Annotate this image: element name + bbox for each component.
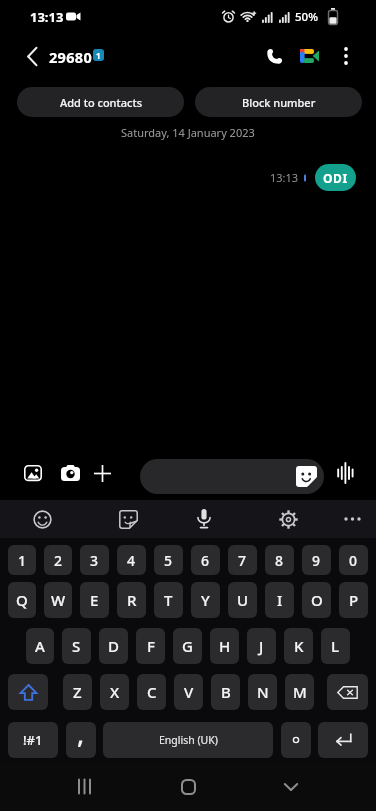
button[interactable]: E xyxy=(80,582,109,618)
staticText: N xyxy=(257,682,269,702)
staticText: H xyxy=(219,636,231,656)
button[interactable]: Q xyxy=(8,582,36,618)
staticText: Y xyxy=(201,590,210,610)
button[interactable]: Y xyxy=(191,582,220,618)
button[interactable]: 5 xyxy=(154,545,183,575)
button[interactable]: V xyxy=(174,674,203,710)
staticText: 4 xyxy=(127,551,136,570)
button[interactable] xyxy=(140,459,324,494)
button[interactable] xyxy=(171,770,205,803)
staticText: I xyxy=(277,590,283,610)
staticText: M xyxy=(293,682,307,702)
button[interactable]: F xyxy=(136,628,165,664)
button[interactable]: H xyxy=(210,628,239,664)
staticText: 8 xyxy=(275,551,284,570)
button[interactable]: I xyxy=(265,582,294,618)
button[interactable]: R xyxy=(117,582,146,618)
button[interactable]: M xyxy=(285,674,314,710)
staticText: Add to contacts xyxy=(60,95,142,110)
button[interactable] xyxy=(332,460,358,486)
button[interactable]: 4 xyxy=(117,545,146,575)
staticText: D xyxy=(108,636,119,656)
button[interactable] xyxy=(8,674,48,710)
button[interactable]: 2 xyxy=(44,545,72,575)
button[interactable] xyxy=(331,39,361,73)
button[interactable]: T xyxy=(154,582,183,618)
staticText: P xyxy=(349,590,359,610)
button[interactable]: ODI xyxy=(315,164,356,191)
button[interactable]: 6 xyxy=(191,545,220,575)
button[interactable]: G xyxy=(173,628,202,664)
button[interactable] xyxy=(27,504,57,534)
button[interactable] xyxy=(189,504,219,534)
button[interactable] xyxy=(274,770,308,803)
button[interactable]: , xyxy=(66,722,96,758)
button[interactable]: 3 xyxy=(80,545,109,575)
button[interactable] xyxy=(293,39,326,73)
button[interactable]: Block number xyxy=(195,87,362,117)
button[interactable]: L xyxy=(321,628,350,664)
staticText: English (UK) xyxy=(159,733,218,747)
button[interactable]: S xyxy=(62,628,91,664)
button[interactable]: 9 xyxy=(302,545,331,575)
staticText: T xyxy=(164,590,173,610)
button[interactable] xyxy=(273,504,303,534)
staticText: Q xyxy=(16,590,28,610)
button[interactable]: Add to contacts xyxy=(17,87,184,117)
button[interactable]: W xyxy=(44,582,72,618)
button[interactable]: A xyxy=(26,628,54,664)
staticText: S xyxy=(72,636,81,656)
button[interactable] xyxy=(318,722,368,758)
button[interactable] xyxy=(113,504,143,534)
staticText: 1 xyxy=(96,50,101,61)
button[interactable]: N xyxy=(248,674,277,710)
button[interactable]: 7 xyxy=(228,545,257,575)
staticText: 13:13 xyxy=(270,170,299,185)
button[interactable]: 8 xyxy=(265,545,294,575)
button[interactable] xyxy=(18,458,48,488)
staticText: C xyxy=(147,682,157,702)
button[interactable] xyxy=(55,458,85,488)
button[interactable]: K xyxy=(284,628,313,664)
staticText: Z xyxy=(73,682,82,702)
button[interactable] xyxy=(68,770,102,803)
staticText: 50% xyxy=(295,9,318,25)
button[interactable]: !#1 xyxy=(8,722,58,758)
staticText: 7 xyxy=(238,551,247,570)
staticText: G xyxy=(182,636,193,656)
button[interactable]: U xyxy=(228,582,257,618)
staticText: A xyxy=(35,636,45,656)
button[interactable] xyxy=(14,37,50,75)
button[interactable]: B xyxy=(211,674,240,710)
button[interactable]: J xyxy=(247,628,276,664)
button[interactable]: O xyxy=(302,582,331,618)
staticText: 2 xyxy=(54,551,63,570)
staticText: , xyxy=(77,722,85,751)
button[interactable]: D xyxy=(99,628,128,664)
staticText: J xyxy=(259,636,264,656)
button[interactable]: 1 xyxy=(8,545,36,575)
button[interactable] xyxy=(281,722,311,758)
staticText: !#1 xyxy=(23,731,43,749)
staticText: 9 xyxy=(312,551,321,570)
button[interactable] xyxy=(327,674,368,710)
button[interactable]: C xyxy=(137,674,166,710)
button[interactable]: P xyxy=(339,582,368,618)
staticText: Block number xyxy=(242,95,316,110)
staticText: Saturday, 14 January 2023 xyxy=(121,125,255,140)
button[interactable]: X xyxy=(100,674,129,710)
staticText: 3 xyxy=(90,551,99,570)
staticText: E xyxy=(90,590,99,610)
button[interactable]: Z xyxy=(63,674,92,710)
button[interactable] xyxy=(258,39,291,73)
staticText: X xyxy=(110,682,120,702)
button[interactable] xyxy=(87,458,117,488)
button[interactable] xyxy=(337,504,367,534)
button[interactable]: English (UK) xyxy=(103,722,273,758)
button[interactable]: 0 xyxy=(339,545,368,575)
staticText: 6 xyxy=(201,551,210,570)
staticText: 1 xyxy=(18,551,27,570)
staticText: B xyxy=(221,682,231,702)
staticText: V xyxy=(184,682,194,702)
staticText: ODI xyxy=(323,170,348,186)
